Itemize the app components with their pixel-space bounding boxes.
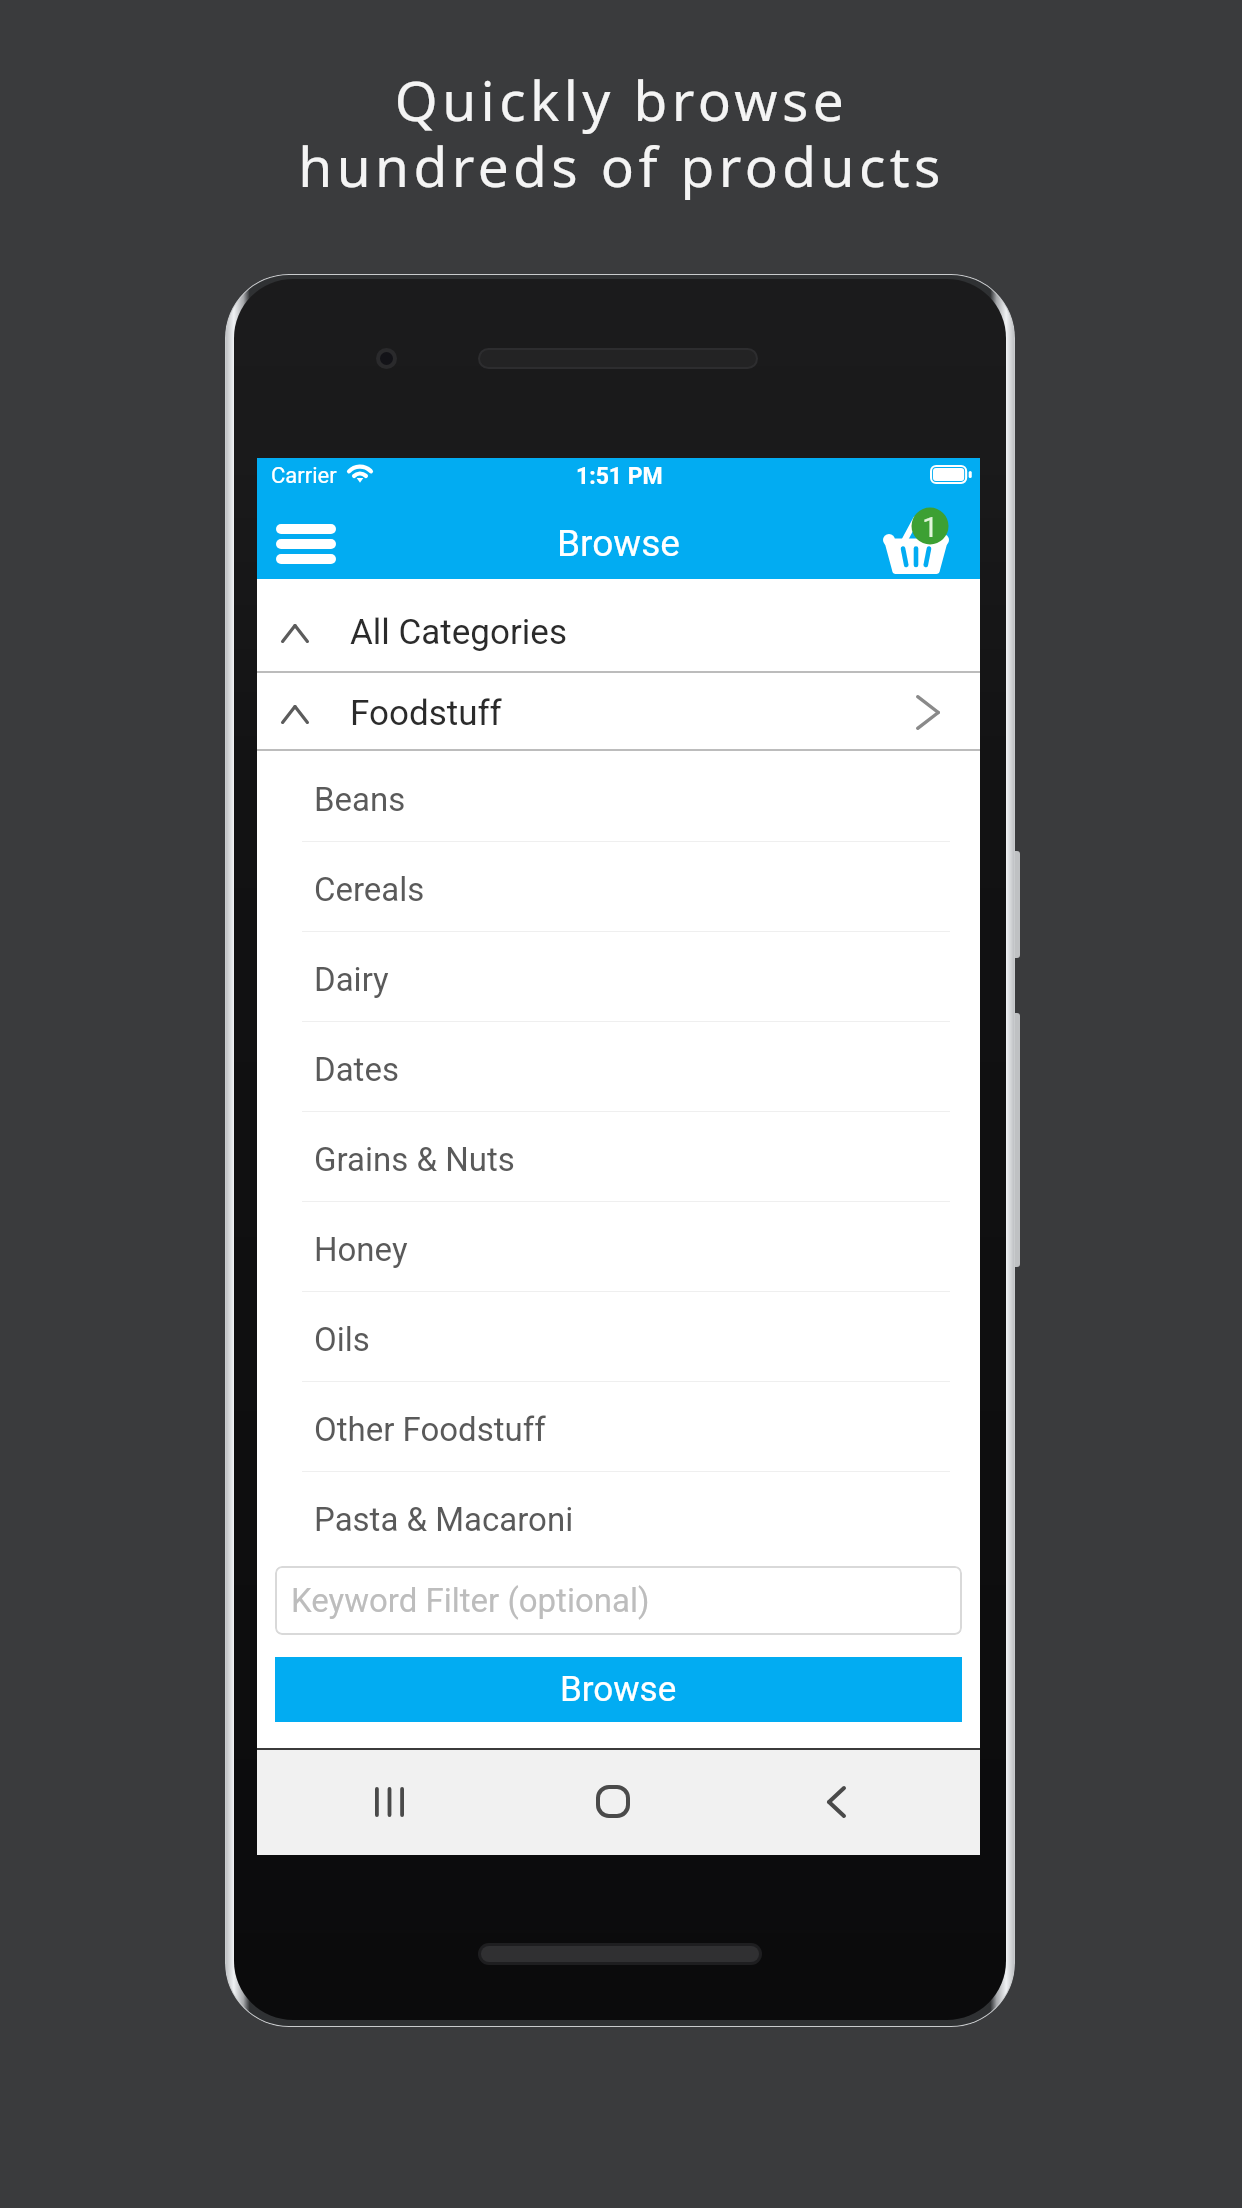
staticText: Foodstuff [350,693,502,734]
staticText: Beans [314,780,406,819]
staticText: Dairy [314,960,389,999]
staticText: Browse [557,522,680,565]
button[interactable]: Shopping cart [879,506,963,587]
button[interactable]: Back [776,1750,896,1855]
staticText: 1 [921,511,939,541]
button[interactable]: Pasta & Macaroni [257,1472,980,1561]
button[interactable]: Other Foodstuff [257,1382,980,1471]
button[interactable]: Browse [275,1657,962,1722]
button[interactable]: Recent apps [329,1750,449,1855]
button[interactable]: Oils [257,1292,980,1381]
button[interactable]: Menu [268,506,344,582]
button[interactable]: Grains & Nuts [257,1112,980,1201]
staticText: Cereals [314,870,425,909]
button[interactable]: Dairy [257,932,980,1021]
staticText: Other Foodstuff [314,1410,546,1449]
staticText: Honey [314,1230,408,1269]
button[interactable]: Home [553,1750,673,1855]
button[interactable]: Keyword Filter (optional) [275,1566,962,1635]
staticText: Dates [314,1050,399,1089]
button[interactable]: Foodstuff [257,673,980,749]
staticText: Pasta & Macaroni [314,1500,574,1539]
button[interactable]: Beans [257,751,980,841]
staticText: Quickly browse hundreds of products [298,62,945,203]
staticText: All Categories [350,612,567,653]
staticText: Browse [560,1669,677,1710]
staticText: 1:51 PM [576,463,663,490]
button[interactable]: Cereals [257,842,980,931]
button[interactable]: Honey [257,1202,980,1291]
staticText: Carrier [271,463,337,489]
staticText: Grains & Nuts [314,1140,515,1179]
staticText: Oils [314,1320,370,1359]
staticText: Keyword Filter (optional) [291,1581,650,1620]
button[interactable]: Dates [257,1022,980,1111]
button[interactable]: All Categories [257,579,980,671]
